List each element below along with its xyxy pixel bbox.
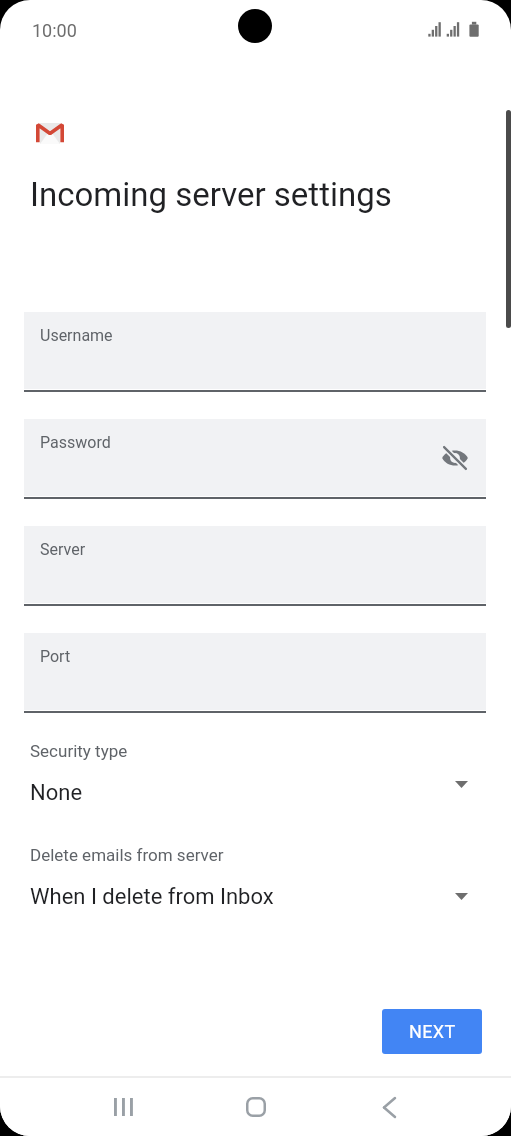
button[interactable]: Port	[24, 633, 486, 711]
button[interactable]: Home	[228, 1079, 284, 1135]
button[interactable]: Delete emails from server	[24, 844, 486, 916]
button[interactable]: Password	[24, 419, 486, 497]
button[interactable]: Show password	[433, 436, 477, 480]
staticText: Incoming server settings	[30, 175, 392, 214]
staticText: 10:00	[32, 20, 77, 41]
staticText: NEXT	[409, 1021, 456, 1042]
button[interactable]: Back	[361, 1079, 417, 1135]
button[interactable]: Server	[24, 526, 486, 604]
button[interactable]: Recent apps	[95, 1079, 151, 1135]
button[interactable]: Security type	[24, 740, 486, 812]
staticText: Password	[40, 433, 111, 452]
staticText: Security type	[30, 741, 128, 761]
staticText: None	[30, 780, 83, 806]
staticText: Server	[40, 540, 86, 559]
staticText: Delete emails from server	[30, 845, 224, 865]
staticText: Port	[40, 647, 71, 666]
staticText: Username	[40, 326, 113, 345]
staticText: When I delete from Inbox	[30, 884, 274, 910]
button[interactable]: NEXT	[382, 1009, 482, 1054]
button[interactable]: Username	[24, 312, 486, 390]
